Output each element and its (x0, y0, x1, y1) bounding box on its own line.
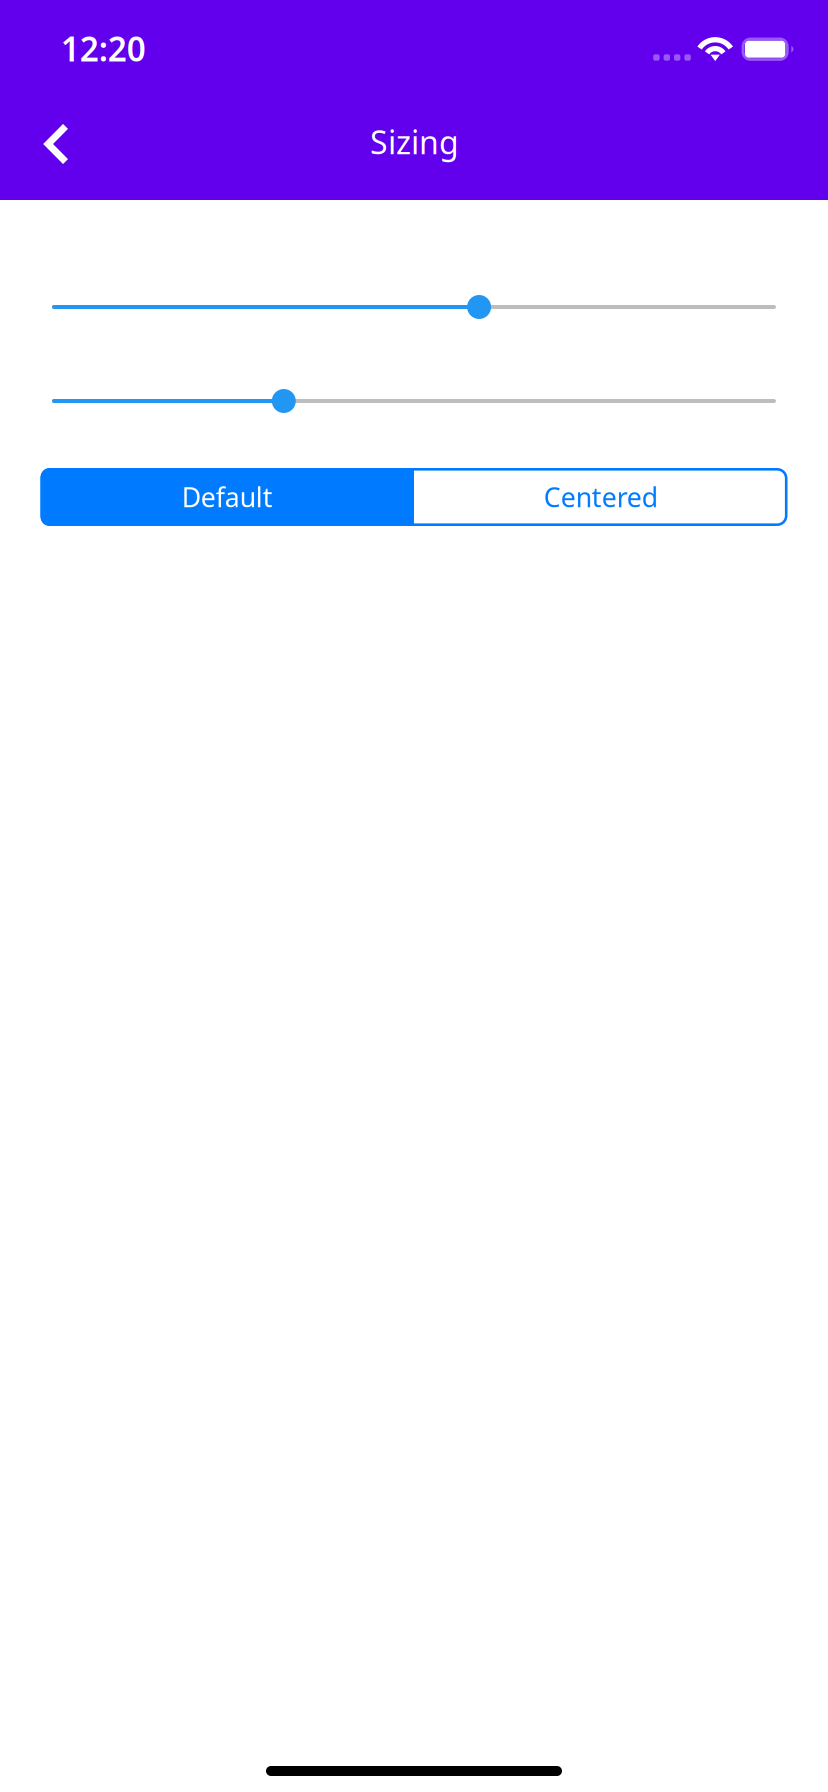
button[interactable]: Centered (414, 468, 787, 526)
staticText: Centered (544, 479, 658, 515)
staticText: 12:20 (61, 26, 146, 71)
button[interactable]: Default (40, 468, 414, 526)
button[interactable]: Back (9, 96, 105, 192)
staticText: Default (182, 479, 273, 515)
button[interactable]: Spacing (52, 389, 776, 413)
button[interactable]: Size (52, 295, 776, 319)
staticText: Sizing (370, 121, 459, 163)
